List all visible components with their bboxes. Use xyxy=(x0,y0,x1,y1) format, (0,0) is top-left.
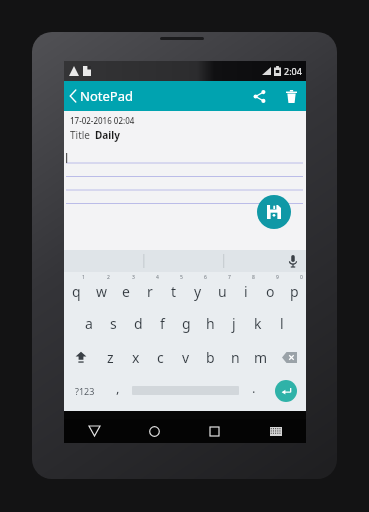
button[interactable]: Enter xyxy=(275,380,297,402)
staticText: t xyxy=(171,282,177,301)
button[interactable]: . xyxy=(242,374,265,407)
button[interactable]: 1 xyxy=(64,272,89,306)
staticText: q xyxy=(72,282,81,301)
staticText: 3 xyxy=(132,274,135,281)
staticText: 9 xyxy=(276,274,279,281)
button[interactable]: b xyxy=(198,340,223,374)
button[interactable]: ?123 xyxy=(64,374,106,407)
staticText: r xyxy=(147,282,153,301)
button[interactable]: f xyxy=(150,306,174,340)
button[interactable]: Voice input xyxy=(280,250,306,272)
staticText: ?123 xyxy=(75,385,95,397)
staticText: a xyxy=(85,314,93,333)
button[interactable]: a xyxy=(76,306,101,340)
staticText: w xyxy=(96,282,108,301)
staticText: k xyxy=(254,314,262,333)
button[interactable]: v xyxy=(173,340,198,374)
button[interactable]: x xyxy=(123,340,148,374)
staticText: Daily xyxy=(95,128,120,142)
button[interactable]: 6 xyxy=(186,272,210,306)
staticText: c xyxy=(157,348,164,367)
button[interactable]: Share xyxy=(242,81,276,111)
staticText: y xyxy=(194,282,202,301)
button[interactable]: 3 xyxy=(114,272,138,306)
staticText: 7 xyxy=(228,274,231,281)
button[interactable]: c xyxy=(148,340,173,374)
staticText: u xyxy=(218,282,227,301)
button[interactable]: 4 xyxy=(138,272,162,306)
button[interactable]: l xyxy=(270,306,294,340)
button[interactable]: m xyxy=(248,340,273,374)
staticText: 6 xyxy=(204,274,207,281)
button[interactable]: , xyxy=(106,374,129,407)
staticText: l xyxy=(280,314,284,333)
staticText: . xyxy=(252,379,256,397)
staticText: 4 xyxy=(156,274,159,281)
button[interactable]: Home xyxy=(124,419,184,443)
staticText: j xyxy=(232,314,236,333)
staticText: d xyxy=(134,314,143,333)
staticText: g xyxy=(182,314,191,333)
button[interactable]: NotePad xyxy=(64,81,141,111)
staticText: m xyxy=(254,348,268,367)
button[interactable]: 5 xyxy=(162,272,186,306)
staticText: h xyxy=(206,314,215,333)
staticText: e xyxy=(122,282,130,301)
button[interactable]: 9 xyxy=(258,272,282,306)
button[interactable]: d xyxy=(126,306,150,340)
button[interactable]: j xyxy=(222,306,246,340)
button[interactable]: Recent apps xyxy=(184,419,245,443)
staticText: v xyxy=(182,348,190,367)
staticText: b xyxy=(206,348,215,367)
staticText: Title xyxy=(70,128,90,142)
button[interactable]: 2 xyxy=(89,272,114,306)
button[interactable]: n xyxy=(223,340,248,374)
staticText: i xyxy=(244,282,248,301)
button[interactable]: Delete xyxy=(276,81,306,111)
staticText: NotePad xyxy=(80,87,133,105)
button[interactable]: 8 xyxy=(234,272,258,306)
staticText: n xyxy=(231,348,240,367)
button[interactable]: Backspace xyxy=(273,340,306,374)
button[interactable]: Space xyxy=(129,374,242,407)
button[interactable]: Save xyxy=(257,195,291,229)
staticText: 2:04 xyxy=(284,65,302,77)
button[interactable]: Back xyxy=(64,419,124,443)
button[interactable]: 0 xyxy=(282,272,306,306)
staticText: 8 xyxy=(252,274,255,281)
staticText: 17-02-2016 02:04 xyxy=(70,115,135,126)
staticText: p xyxy=(290,282,299,301)
button[interactable]: z xyxy=(98,340,123,374)
button[interactable]: s xyxy=(101,306,126,340)
staticText: , xyxy=(116,379,120,397)
staticText: o xyxy=(266,282,275,301)
staticText: s xyxy=(110,314,117,333)
staticText: x xyxy=(132,348,140,367)
staticText: 1 xyxy=(82,274,85,281)
staticText: f xyxy=(160,314,165,333)
staticText: 0 xyxy=(300,274,303,281)
button[interactable]: 7 xyxy=(210,272,234,306)
button[interactable]: g xyxy=(174,306,198,340)
staticText: 2 xyxy=(107,274,110,281)
staticText: z xyxy=(107,348,114,367)
button[interactable]: k xyxy=(246,306,270,340)
button[interactable]: Shift xyxy=(64,340,98,374)
staticText: 5 xyxy=(180,274,183,281)
button[interactable]: Hide keyboard xyxy=(245,419,306,443)
button[interactable]: h xyxy=(198,306,222,340)
